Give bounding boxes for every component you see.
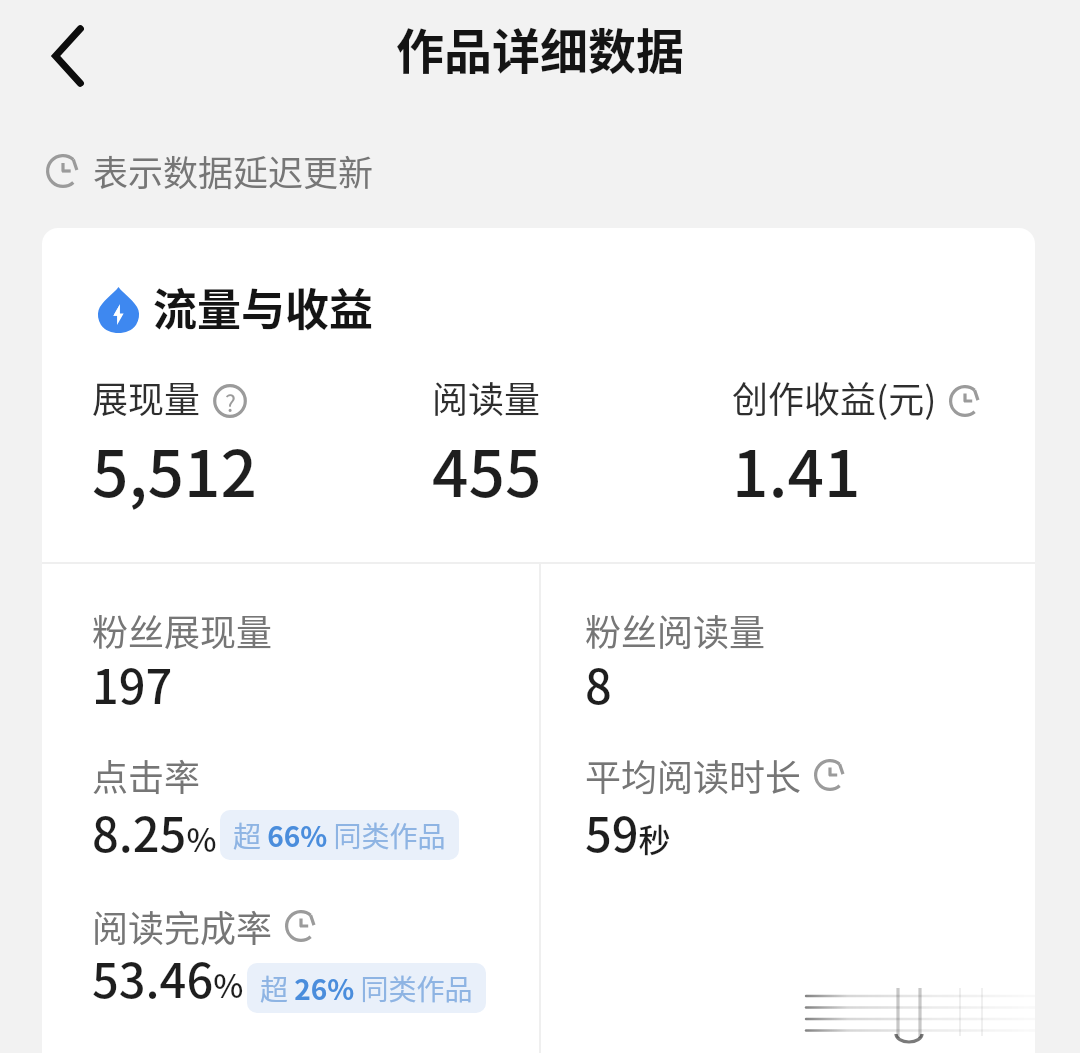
- staticText: 8.25%: [92, 797, 217, 865]
- staticText: 59秒: [585, 797, 671, 865]
- staticText: 展现量: [92, 371, 201, 423]
- button[interactable]: 粉丝阅读量: [585, 604, 766, 724]
- staticText: 8: [585, 649, 612, 717]
- staticText: 阅读量: [432, 371, 541, 423]
- staticText: 点击率: [92, 749, 201, 801]
- button[interactable]: 展现量: [92, 371, 432, 516]
- staticText: 455: [432, 423, 542, 516]
- button[interactable]: 平均阅读时长: [585, 749, 846, 869]
- button[interactable]: 超 26% 同类作品: [247, 963, 486, 1013]
- staticText: 197: [92, 649, 173, 717]
- button[interactable]: 阅读完成率: [92, 900, 486, 1020]
- button[interactable]: 粉丝展现量: [92, 604, 273, 724]
- button[interactable]: 点击率: [92, 749, 459, 869]
- staticText: 1.41: [732, 423, 861, 516]
- staticText: 流量与收益: [153, 275, 373, 339]
- button[interactable]: 超 66% 同类作品: [220, 810, 459, 860]
- staticText: 创作收益(元): [732, 371, 937, 423]
- staticText: 表示数据延迟更新: [93, 145, 374, 196]
- staticText: 超 26% 同类作品: [260, 968, 473, 1009]
- staticText: ?: [225, 385, 236, 418]
- staticText: 粉丝阅读量: [585, 604, 766, 656]
- staticText: 超 66% 同类作品: [233, 815, 446, 856]
- staticText: 5,512: [92, 423, 257, 516]
- staticText: 阅读完成率: [92, 900, 273, 952]
- staticText: 平均阅读时长: [585, 749, 802, 801]
- button[interactable]: Back: [30, 18, 106, 94]
- button[interactable]: 创作收益(元): [732, 371, 1032, 516]
- staticText: 53.46%: [92, 943, 244, 1011]
- staticText: 作品详细数据: [396, 13, 685, 83]
- button[interactable]: 阅读量: [432, 371, 732, 516]
- staticText: 粉丝展现量: [92, 604, 273, 656]
